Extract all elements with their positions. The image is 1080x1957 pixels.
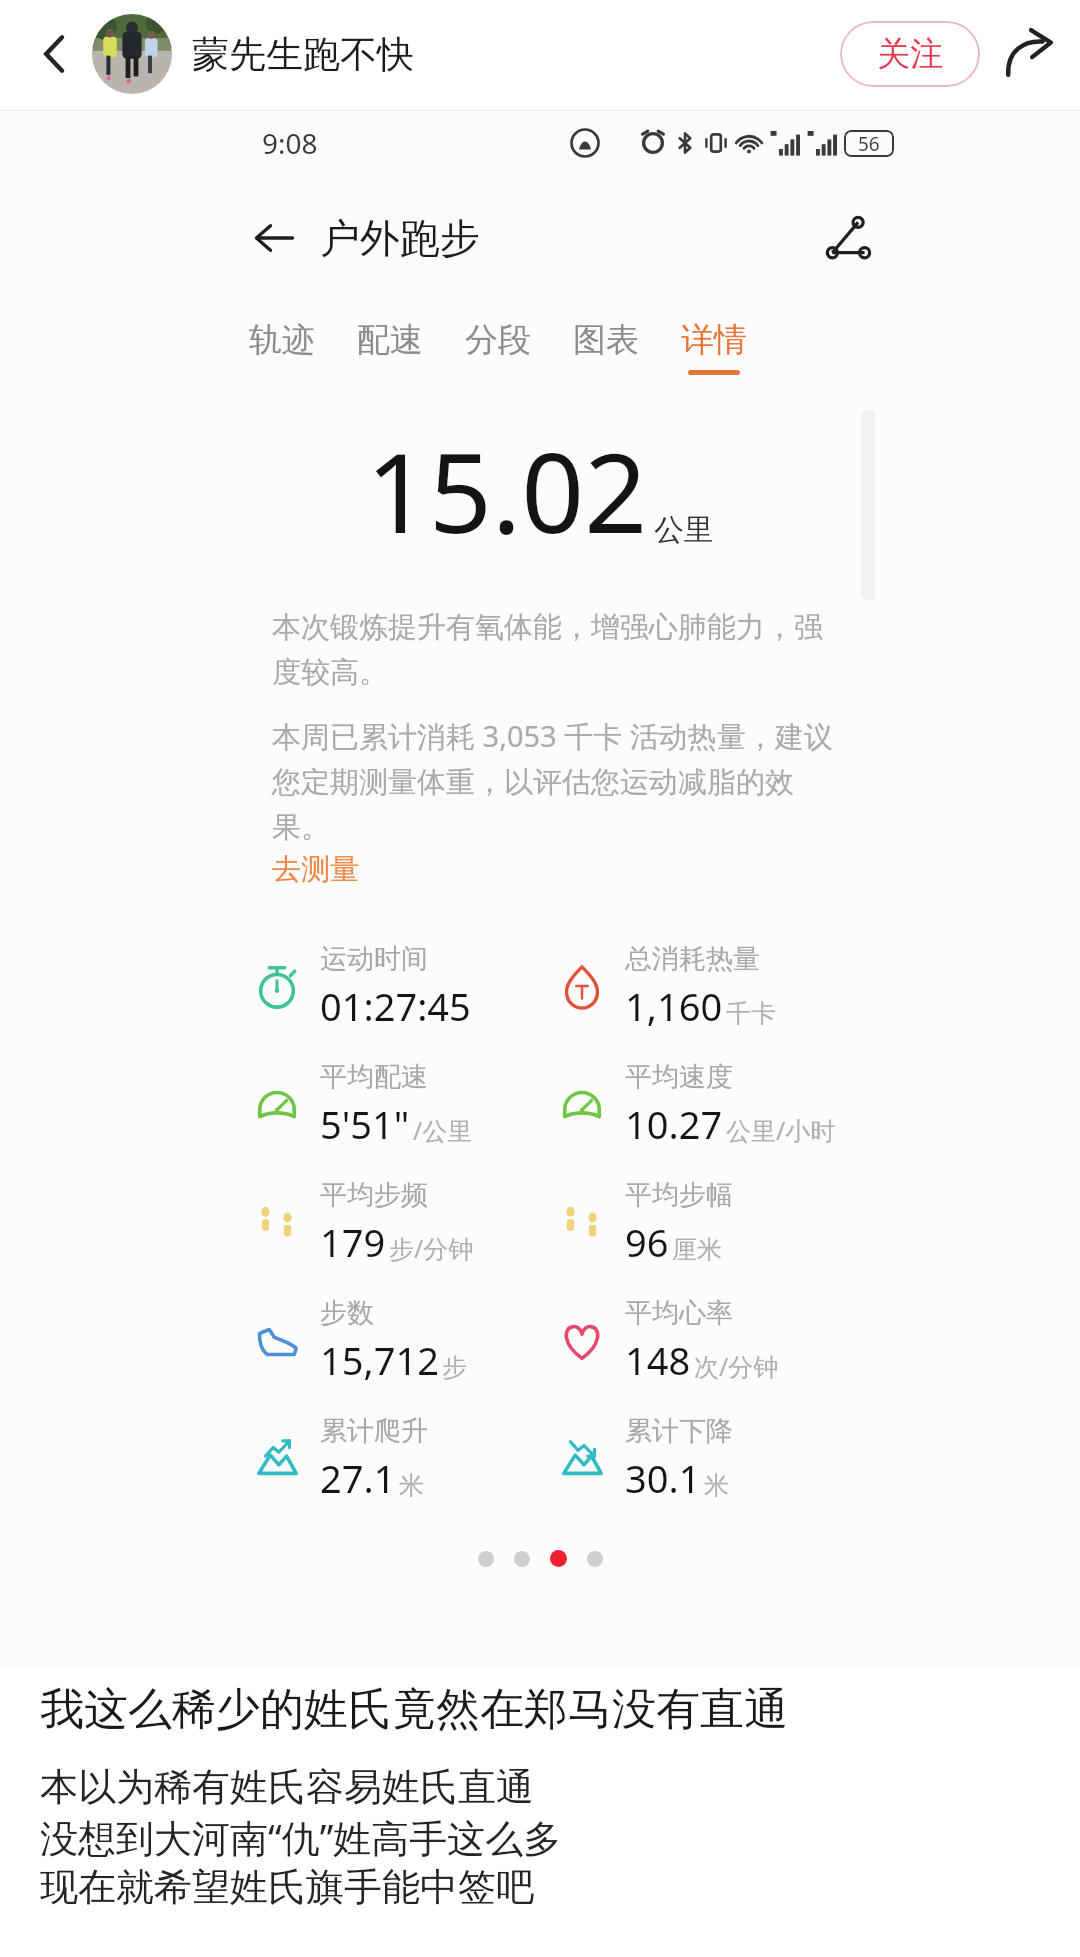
staticText: 运动时间 [320,942,428,976]
staticText: 平均步幅 [625,1178,733,1212]
staticText: 千卡 [726,998,776,1029]
staticText: 01:27:45 [320,980,471,1032]
staticText: 现在就希望姓氏旗手能中签吧 [40,1863,534,1911]
button[interactable]: Page 3 [550,1550,567,1567]
staticText: 本周已累计消耗 3,053 千卡 活动热量，建议您定期测量体重，以评估您运动减脂… [272,716,835,845]
staticText: 蒙先生跑不快 [192,31,414,78]
staticText: 累计下降 [625,1414,733,1448]
button[interactable]: Back [252,213,480,263]
staticText: 公里 [654,511,714,549]
button[interactable]: 步数 [250,1296,555,1386]
staticText: 我这么稀少的姓氏竟然在郑马没有直通 [40,1682,788,1737]
staticText: 关注 [877,33,943,75]
staticText: 分段 [465,319,531,361]
button[interactable]: 图表 [569,315,643,374]
staticText: 步/分钟 [389,1231,474,1265]
button[interactable]: 平均配速 [250,1060,555,1150]
staticText: 去测量 [272,851,359,888]
staticText: 户外跑步 [320,213,480,263]
staticText: 图表 [573,319,639,361]
staticText: 米 [704,1470,729,1501]
button[interactable]: 总消耗热量 [555,942,860,1032]
staticText: /公里 [413,1113,473,1147]
staticText: 轨迹 [249,319,315,361]
button[interactable]: 详情 [677,315,751,379]
button[interactable]: Share [992,17,1066,91]
staticText: 148 [625,1334,691,1386]
button[interactable]: 平均速度 [555,1060,860,1150]
button[interactable]: 累计爬升 [250,1414,555,1504]
button[interactable]: Profile photo [92,14,172,94]
staticText: 平均步频 [320,1178,428,1212]
staticText: 15,712 [320,1334,439,1386]
staticText: 56 [858,131,880,157]
staticText: 本以为稀有姓氏容易姓氏直通 [40,1763,534,1811]
staticText: 179 [320,1216,386,1268]
staticText: 总消耗热量 [625,942,760,976]
staticText: 1,160 [625,980,723,1032]
button[interactable]: Page 2 [514,1551,530,1567]
button[interactable]: 累计下降 [555,1414,860,1504]
staticText: 平均配速 [320,1060,428,1094]
staticText: 累计爬升 [320,1414,428,1448]
staticText: 公里/小时 [726,1113,836,1147]
button[interactable]: 配速 [353,315,427,374]
staticText: 30.1 [625,1452,701,1504]
button[interactable]: Route [816,206,880,270]
button[interactable]: 分段 [461,315,535,374]
staticText: 米 [399,1470,424,1501]
button[interactable]: Page 4 [587,1551,603,1567]
button[interactable]: Back [18,17,92,91]
button[interactable]: 轨迹 [245,315,319,374]
staticText: 15.02 [366,415,648,565]
staticText: 步数 [320,1296,374,1330]
button[interactable]: 关注 [840,21,980,87]
staticText: 步 [442,1352,467,1383]
staticText: 详情 [681,319,747,361]
staticText: 9:08 [262,124,318,162]
staticText: 配速 [357,319,423,361]
button[interactable]: 蒙先生跑不快 [192,31,414,78]
staticText: 10.27 [625,1098,723,1150]
staticText: 厘米 [672,1234,722,1265]
button[interactable]: 运动时间 [250,942,555,1032]
button[interactable]: 平均步幅 [555,1178,860,1268]
staticText: 平均心率 [625,1296,733,1330]
staticText: 5'51" [320,1098,410,1150]
staticText: 没想到大河南“仇”姓高手这么多 [40,1811,562,1863]
staticText: 27.1 [320,1452,396,1504]
button[interactable]: Page 1 [478,1551,494,1567]
staticText: 96 [625,1216,669,1268]
button[interactable]: 平均心率 [555,1296,860,1386]
button[interactable]: 平均步频 [250,1178,555,1268]
staticText: 平均速度 [625,1060,733,1094]
staticText: 本次锻炼提升有氧体能，增强心肺能力，强度较高。 [272,609,835,690]
other: Back [252,216,296,260]
button[interactable]: 去测量 [272,851,359,888]
staticText: 次/分钟 [694,1349,779,1383]
